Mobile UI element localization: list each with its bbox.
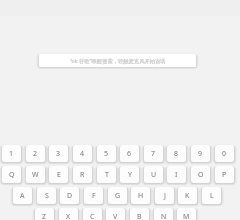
button[interactable]: E bbox=[49, 166, 68, 183]
staticText: E bbox=[57, 170, 61, 180]
button[interactable]: G bbox=[108, 187, 127, 204]
button[interactable]: 8 bbox=[167, 145, 186, 162]
staticText: U bbox=[151, 170, 157, 180]
button[interactable]: Y bbox=[120, 166, 139, 183]
button[interactable]: O bbox=[191, 166, 210, 183]
staticText: D bbox=[67, 191, 73, 201]
staticText: 9 bbox=[198, 149, 203, 159]
staticText: B bbox=[137, 212, 142, 220]
staticText: 6 bbox=[127, 149, 132, 159]
staticText: “ok 谷歌”唤醒搜索，轻触麦克风开始说话 bbox=[70, 57, 166, 64]
staticText: A bbox=[20, 191, 25, 201]
button[interactable]: I bbox=[167, 166, 186, 183]
staticText: X bbox=[66, 212, 71, 220]
button[interactable]: U bbox=[144, 166, 163, 183]
staticText: 5 bbox=[104, 149, 109, 159]
staticText: 3 bbox=[56, 149, 61, 159]
staticText: I bbox=[175, 170, 178, 180]
button[interactable]: H bbox=[131, 187, 150, 204]
staticText: 7 bbox=[151, 149, 156, 159]
button[interactable]: N bbox=[154, 208, 173, 220]
staticText: 1 bbox=[9, 149, 14, 159]
staticText: C bbox=[90, 212, 95, 220]
staticText: 0 bbox=[222, 149, 227, 159]
staticText: O bbox=[198, 170, 204, 180]
staticText: G bbox=[115, 191, 121, 201]
button[interactable]: 6 bbox=[120, 145, 139, 162]
staticText: W bbox=[32, 170, 39, 180]
button[interactable]: P bbox=[215, 166, 234, 183]
button[interactable]: J bbox=[155, 187, 174, 204]
staticText: 2 bbox=[33, 149, 38, 159]
staticText: M bbox=[183, 212, 190, 220]
button[interactable]: “ok 谷歌”唤醒搜索，轻触麦克风开始说话 bbox=[39, 54, 196, 67]
button[interactable]: T bbox=[97, 166, 116, 183]
staticText: R bbox=[80, 170, 85, 180]
staticText: V bbox=[113, 212, 118, 220]
button[interactable]: 5 bbox=[97, 145, 116, 162]
button[interactable]: Q bbox=[2, 166, 21, 183]
button[interactable]: 0 bbox=[215, 145, 234, 162]
button[interactable]: C bbox=[83, 208, 102, 220]
staticText: 4 bbox=[80, 149, 85, 159]
staticText: 8 bbox=[174, 149, 179, 159]
button[interactable]: 1 bbox=[2, 145, 21, 162]
button[interactable]: F bbox=[84, 187, 103, 204]
button[interactable]: W bbox=[26, 166, 45, 183]
staticText: Y bbox=[128, 170, 132, 180]
button[interactable]: S bbox=[37, 187, 56, 204]
staticText: J bbox=[164, 191, 166, 201]
button[interactable]: A bbox=[13, 187, 32, 204]
staticText: K bbox=[185, 191, 190, 201]
staticText: P bbox=[222, 170, 227, 180]
staticText: T bbox=[105, 170, 109, 180]
button[interactable]: 2 bbox=[26, 145, 45, 162]
button[interactable]: X bbox=[59, 208, 78, 220]
button[interactable]: M bbox=[177, 208, 196, 220]
button[interactable]: Z bbox=[35, 208, 54, 220]
staticText: S bbox=[45, 191, 49, 201]
staticText: Q bbox=[9, 170, 15, 180]
button[interactable]: D bbox=[60, 187, 79, 204]
button[interactable]: 9 bbox=[191, 145, 210, 162]
button[interactable]: K bbox=[178, 187, 197, 204]
staticText: L bbox=[210, 191, 214, 201]
button[interactable]: B bbox=[130, 208, 149, 220]
button[interactable]: 4 bbox=[73, 145, 92, 162]
staticText: N bbox=[161, 212, 167, 220]
button[interactable]: 7 bbox=[144, 145, 163, 162]
button[interactable]: 3 bbox=[49, 145, 68, 162]
button[interactable]: R bbox=[73, 166, 92, 183]
button[interactable]: L bbox=[202, 187, 221, 204]
staticText: F bbox=[92, 191, 96, 201]
staticText: Z bbox=[42, 212, 47, 220]
staticText: H bbox=[138, 191, 144, 201]
button[interactable]: V bbox=[106, 208, 125, 220]
